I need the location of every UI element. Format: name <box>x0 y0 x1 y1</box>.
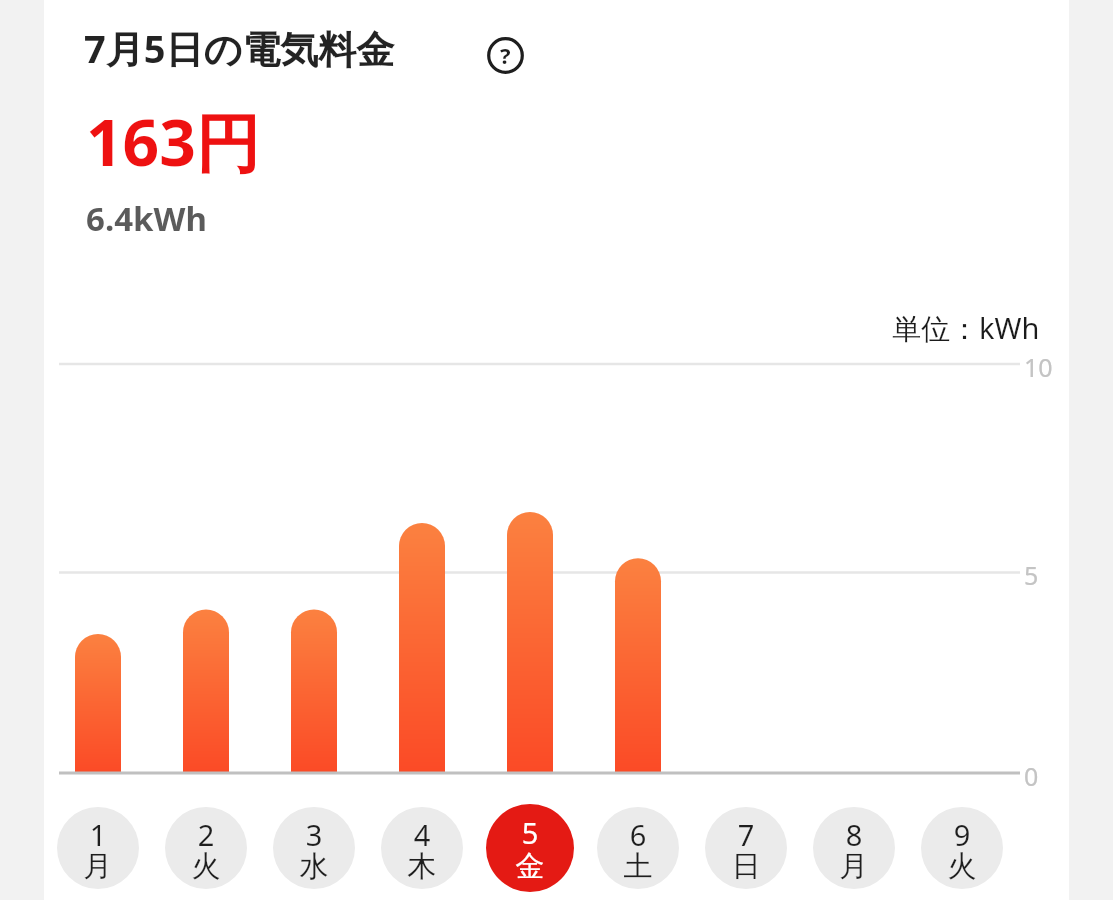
button[interactable]: 9 <box>921 807 1003 889</box>
staticText: 火 <box>165 848 247 886</box>
button[interactable]: 7 <box>705 807 787 889</box>
staticText: 金 <box>486 848 574 886</box>
staticText: 月 <box>813 848 895 886</box>
staticText: 9 <box>921 815 1003 849</box>
button[interactable]: 6 <box>597 807 679 889</box>
staticText: 5 <box>486 813 574 847</box>
button[interactable]: 2 <box>165 807 247 889</box>
staticText: 単位：kWh <box>892 308 1040 348</box>
staticText: 木 <box>381 848 463 886</box>
button[interactable]: 8 <box>813 807 895 889</box>
staticText: 土 <box>597 848 679 886</box>
staticText: 6 <box>597 815 679 849</box>
staticText: 日 <box>705 848 787 886</box>
button[interactable]: 1 <box>57 807 139 889</box>
staticText: 163円 <box>86 98 260 184</box>
staticText: 水 <box>273 848 355 886</box>
staticText: 火 <box>921 848 1003 886</box>
staticText: 10 <box>1024 350 1053 384</box>
staticText: 2 <box>165 815 247 849</box>
staticText: 8 <box>813 815 895 849</box>
staticText: 0 <box>1024 759 1039 793</box>
staticText: 月 <box>57 848 139 886</box>
staticText: 7月5日の電気料金 <box>84 22 395 74</box>
staticText: 1 <box>57 815 139 849</box>
button[interactable]: 4 <box>381 807 463 889</box>
button[interactable]: ヘルプ <box>483 33 527 77</box>
staticText: 6.4kWh <box>86 196 207 241</box>
staticText: 5 <box>1024 558 1039 592</box>
button[interactable]: 5 <box>486 804 574 892</box>
staticText: ? <box>500 40 511 70</box>
button[interactable]: 3 <box>273 807 355 889</box>
staticText: 3 <box>273 815 355 849</box>
staticText: 4 <box>381 815 463 849</box>
staticText: 7 <box>705 815 787 849</box>
